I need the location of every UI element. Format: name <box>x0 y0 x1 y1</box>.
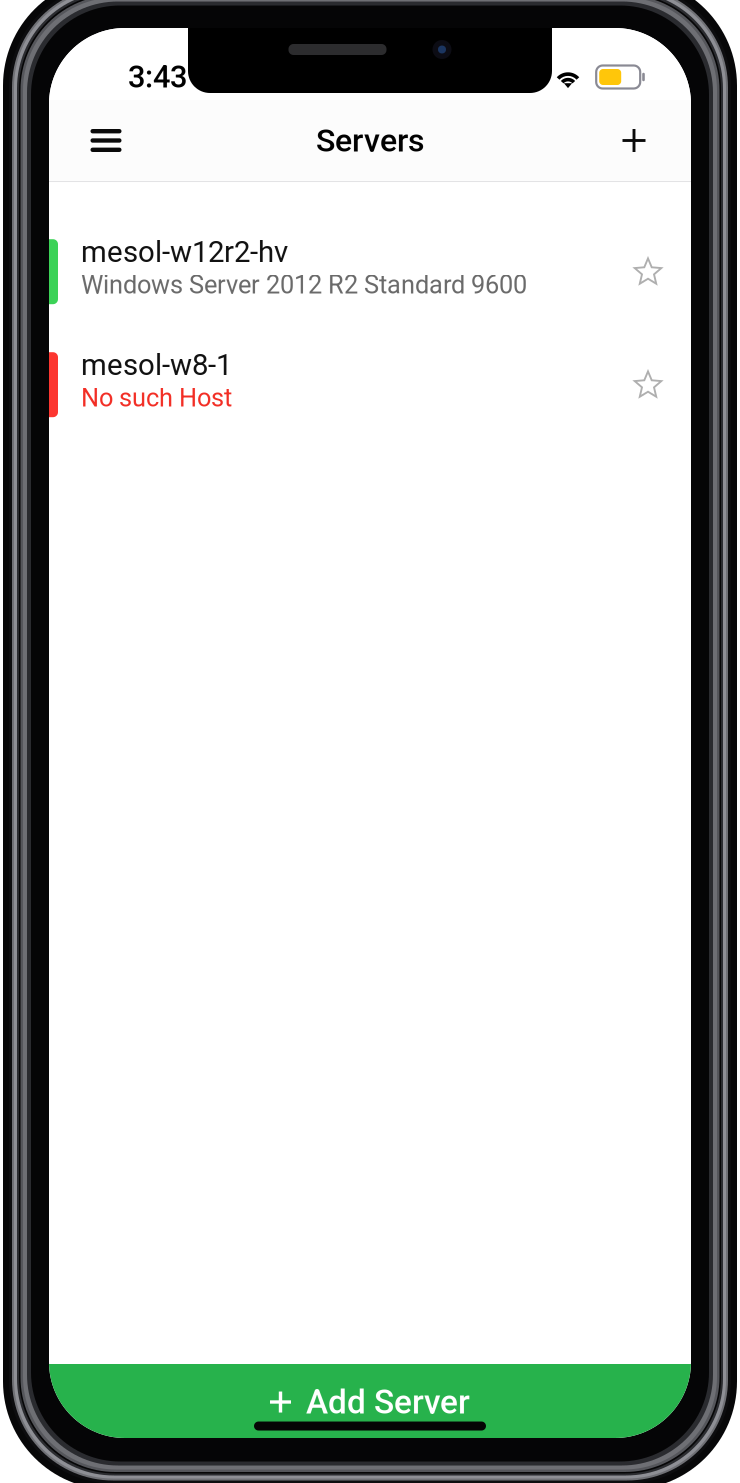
button[interactable]: Add server <box>599 100 691 181</box>
staticText: Add Server <box>306 1382 470 1422</box>
button[interactable]: Add Server <box>49 1364 691 1438</box>
staticText: mesol-w12r2-hv <box>81 235 288 269</box>
staticText: Servers <box>316 122 424 159</box>
button[interactable]: mesol-w8-1 <box>49 328 691 441</box>
staticText: Windows Server 2012 R2 Standard 9600 <box>81 270 527 300</box>
button[interactable]: Menu <box>49 100 141 181</box>
staticText: No such Host <box>81 383 232 413</box>
staticText: 3:43 <box>128 59 187 95</box>
staticText: mesol-w8-1 <box>81 348 232 382</box>
button[interactable]: mesol-w12r2-hv <box>49 215 691 328</box>
